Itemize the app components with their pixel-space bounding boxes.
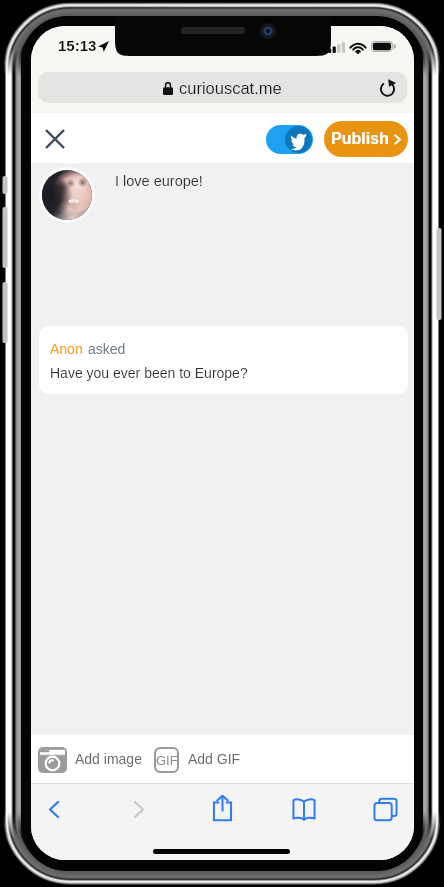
button[interactable]: Add GIF <box>188 751 241 767</box>
button[interactable]: Close <box>40 124 70 154</box>
button[interactable]: Anon <box>39 326 408 394</box>
button[interactable]: curiouscat.me <box>38 72 407 103</box>
button[interactable]: Bookmarks <box>283 788 325 830</box>
button[interactable]: Share <box>201 787 243 829</box>
button[interactable]: Add image <box>75 751 142 767</box>
staticText: 15:13 <box>58 37 97 54</box>
button[interactable]: Forward <box>118 788 160 830</box>
staticText: curiouscat.me <box>179 79 282 97</box>
button[interactable]: Add GIF <box>151 744 181 776</box>
button[interactable]: Reload <box>375 76 399 100</box>
staticText: I love europe! <box>115 173 203 189</box>
button[interactable]: Share to Twitter <box>266 125 313 154</box>
staticText: GIF <box>156 753 178 768</box>
staticText: Anon <box>50 341 83 357</box>
button[interactable]: Back <box>33 788 75 830</box>
staticText: Publish <box>331 130 389 148</box>
staticText: Have you ever been to Europe? <box>50 365 248 381</box>
button[interactable]: Publish <box>324 121 408 157</box>
button[interactable]: Tabs <box>364 788 406 830</box>
button[interactable]: Add image <box>35 744 70 776</box>
staticText: asked <box>88 341 126 357</box>
